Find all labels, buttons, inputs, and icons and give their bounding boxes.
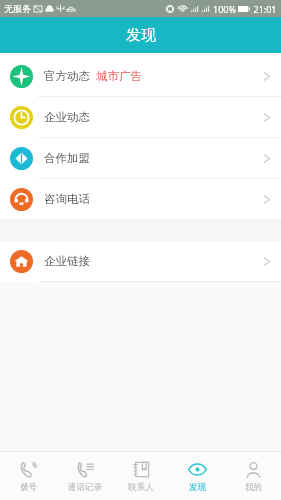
button[interactable]: 官方动态 (0, 56, 281, 96)
button[interactable]: 咨询电话 (0, 179, 281, 219)
staticText: 合作加盟 (44, 151, 90, 165)
staticText: 我的 (245, 482, 262, 493)
staticText: 发现 (189, 482, 206, 493)
button[interactable]: 发现 (169, 452, 225, 500)
button[interactable]: 联系人 (113, 452, 169, 500)
staticText: 企业链接 (44, 254, 90, 268)
button[interactable]: 合作加盟 (0, 138, 281, 178)
button[interactable]: 我的 (225, 452, 281, 500)
button[interactable]: 企业链接 (0, 241, 281, 281)
staticText: 通话记录 (68, 482, 102, 493)
button[interactable]: 企业动态 (0, 97, 281, 137)
staticText: 联系人 (128, 482, 154, 493)
button[interactable]: 通话记录 (57, 452, 113, 500)
staticText: 咨询电话 (44, 192, 90, 206)
staticText: 发现 (126, 26, 156, 45)
staticText: 官方动态 (44, 69, 90, 83)
staticText: 无服务 (4, 3, 31, 14)
button[interactable]: 拨号 (0, 452, 57, 500)
staticText: 城市广告 (96, 69, 142, 83)
staticText: 企业动态 (44, 110, 90, 124)
staticText: 拨号 (20, 482, 37, 493)
staticText: 21:01 (253, 3, 277, 15)
staticText: 100% (213, 3, 236, 15)
